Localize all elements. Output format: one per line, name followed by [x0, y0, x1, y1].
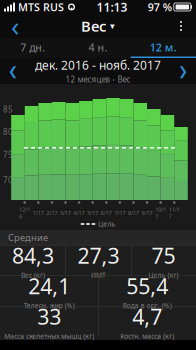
button[interactable]: Back: [0, 14, 30, 38]
staticText: 6/17: [101, 209, 112, 217]
staticText: Цель (кг): [148, 271, 178, 280]
staticText: 4,7: [132, 302, 162, 331]
staticText: 5/17: [87, 209, 98, 217]
staticText: 12/16: [19, 206, 30, 220]
staticText: Средние: [8, 231, 48, 244]
staticText: 12 месяцев - Вес: [65, 74, 130, 85]
staticText: 75: [151, 241, 175, 270]
staticText: Масса скелетных мышц (кг): [4, 332, 94, 341]
staticText: 11:13: [96, 0, 127, 15]
button[interactable]: Вес: [73, 13, 123, 39]
staticText: 4/17: [74, 209, 85, 217]
staticText: 4 н.: [88, 40, 107, 54]
button[interactable]: More options: [166, 14, 196, 38]
staticText: 8/17: [128, 209, 139, 217]
staticText: ❮: [8, 64, 18, 78]
staticText: 10/17: [155, 206, 166, 220]
staticText: 55,4: [126, 272, 168, 300]
staticText: 7 дн.: [20, 40, 45, 54]
staticText: ▾: [110, 21, 115, 31]
staticText: 84,3: [12, 241, 54, 270]
staticText: 85: [3, 104, 13, 115]
staticText: Вода в орг. (%): [123, 301, 172, 310]
staticText: 7/17: [114, 209, 125, 217]
staticText: 70: [3, 175, 13, 185]
staticText: ‹: [11, 8, 19, 44]
staticText: 3/17: [60, 209, 71, 217]
staticText: дек. 2016 - нояб. 2017: [35, 57, 161, 73]
staticText: MTS RUS: [18, 0, 64, 14]
staticText: 9/17: [142, 209, 153, 217]
staticText: Телесн. жир (%): [24, 301, 75, 310]
staticText: Костн. масса (кг): [120, 332, 174, 341]
staticText: 97 %: [148, 0, 172, 14]
staticText: 27,3: [77, 241, 119, 270]
button[interactable]: 7 дн.: [0, 38, 65, 58]
staticText: 75: [3, 149, 13, 160]
staticText: Вес (кг): [21, 271, 45, 280]
staticText: ИМТ: [91, 271, 106, 280]
button[interactable]: 4 н.: [65, 38, 131, 58]
staticText: Цель: [98, 220, 115, 228]
button[interactable]: Next period: [170, 58, 196, 84]
staticText: 80: [3, 127, 13, 137]
staticText: 12 м.: [150, 40, 177, 54]
staticText: Вес: [81, 16, 107, 36]
staticText: 2/17: [46, 209, 57, 217]
staticText: 24,1: [28, 272, 70, 300]
staticText: 33: [37, 302, 61, 331]
staticText: ❯: [178, 64, 188, 78]
staticText: 1/17: [33, 209, 44, 217]
button[interactable]: 12 м.: [131, 38, 196, 58]
button[interactable]: Previous period: [0, 58, 26, 84]
staticText: 11/17: [169, 206, 180, 220]
